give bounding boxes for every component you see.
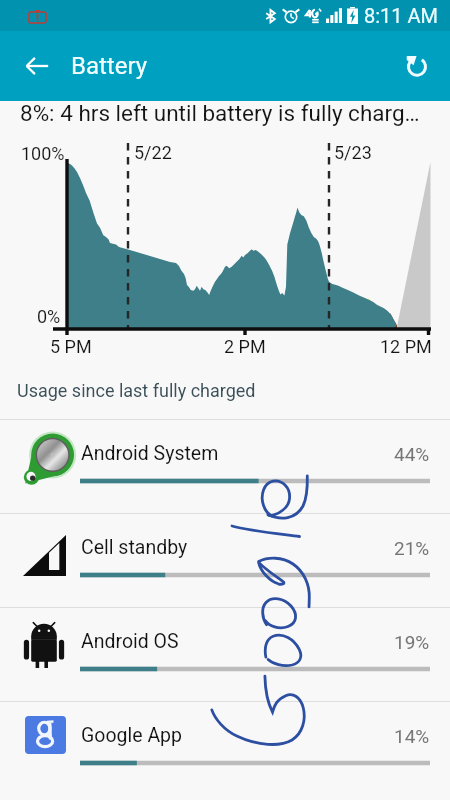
staticText: 8:11 AM (364, 4, 439, 27)
staticText: Android System (81, 442, 219, 465)
staticText: 0% (37, 306, 61, 327)
staticText: 5/22 (134, 142, 172, 163)
button[interactable]: Back (14, 43, 60, 89)
staticText: Google App (81, 724, 183, 747)
staticText: 44% (394, 443, 430, 465)
button[interactable]: Cell standby (0, 513, 450, 607)
staticText: Battery (71, 52, 148, 80)
staticText: 5/23 (334, 142, 372, 163)
staticText: Android OS (81, 630, 179, 653)
staticText: 8%: 4 hrs left until battery is fully ch… (20, 100, 420, 126)
staticText: 21% (394, 537, 430, 559)
staticText: 5 PM (50, 336, 92, 357)
staticText: Usage since last fully charged (17, 380, 256, 401)
button[interactable]: Google App (0, 701, 450, 795)
staticText: 100% (21, 143, 65, 164)
staticText: Cell standby (81, 536, 188, 559)
button[interactable]: Refresh (394, 43, 440, 89)
staticText: 2 PM (224, 336, 266, 357)
button[interactable]: Android OS (0, 607, 450, 701)
staticText: 19% (394, 631, 430, 653)
staticText: 14% (394, 725, 430, 747)
button[interactable]: Android System (0, 419, 450, 513)
staticText: 12 PM (380, 336, 432, 357)
